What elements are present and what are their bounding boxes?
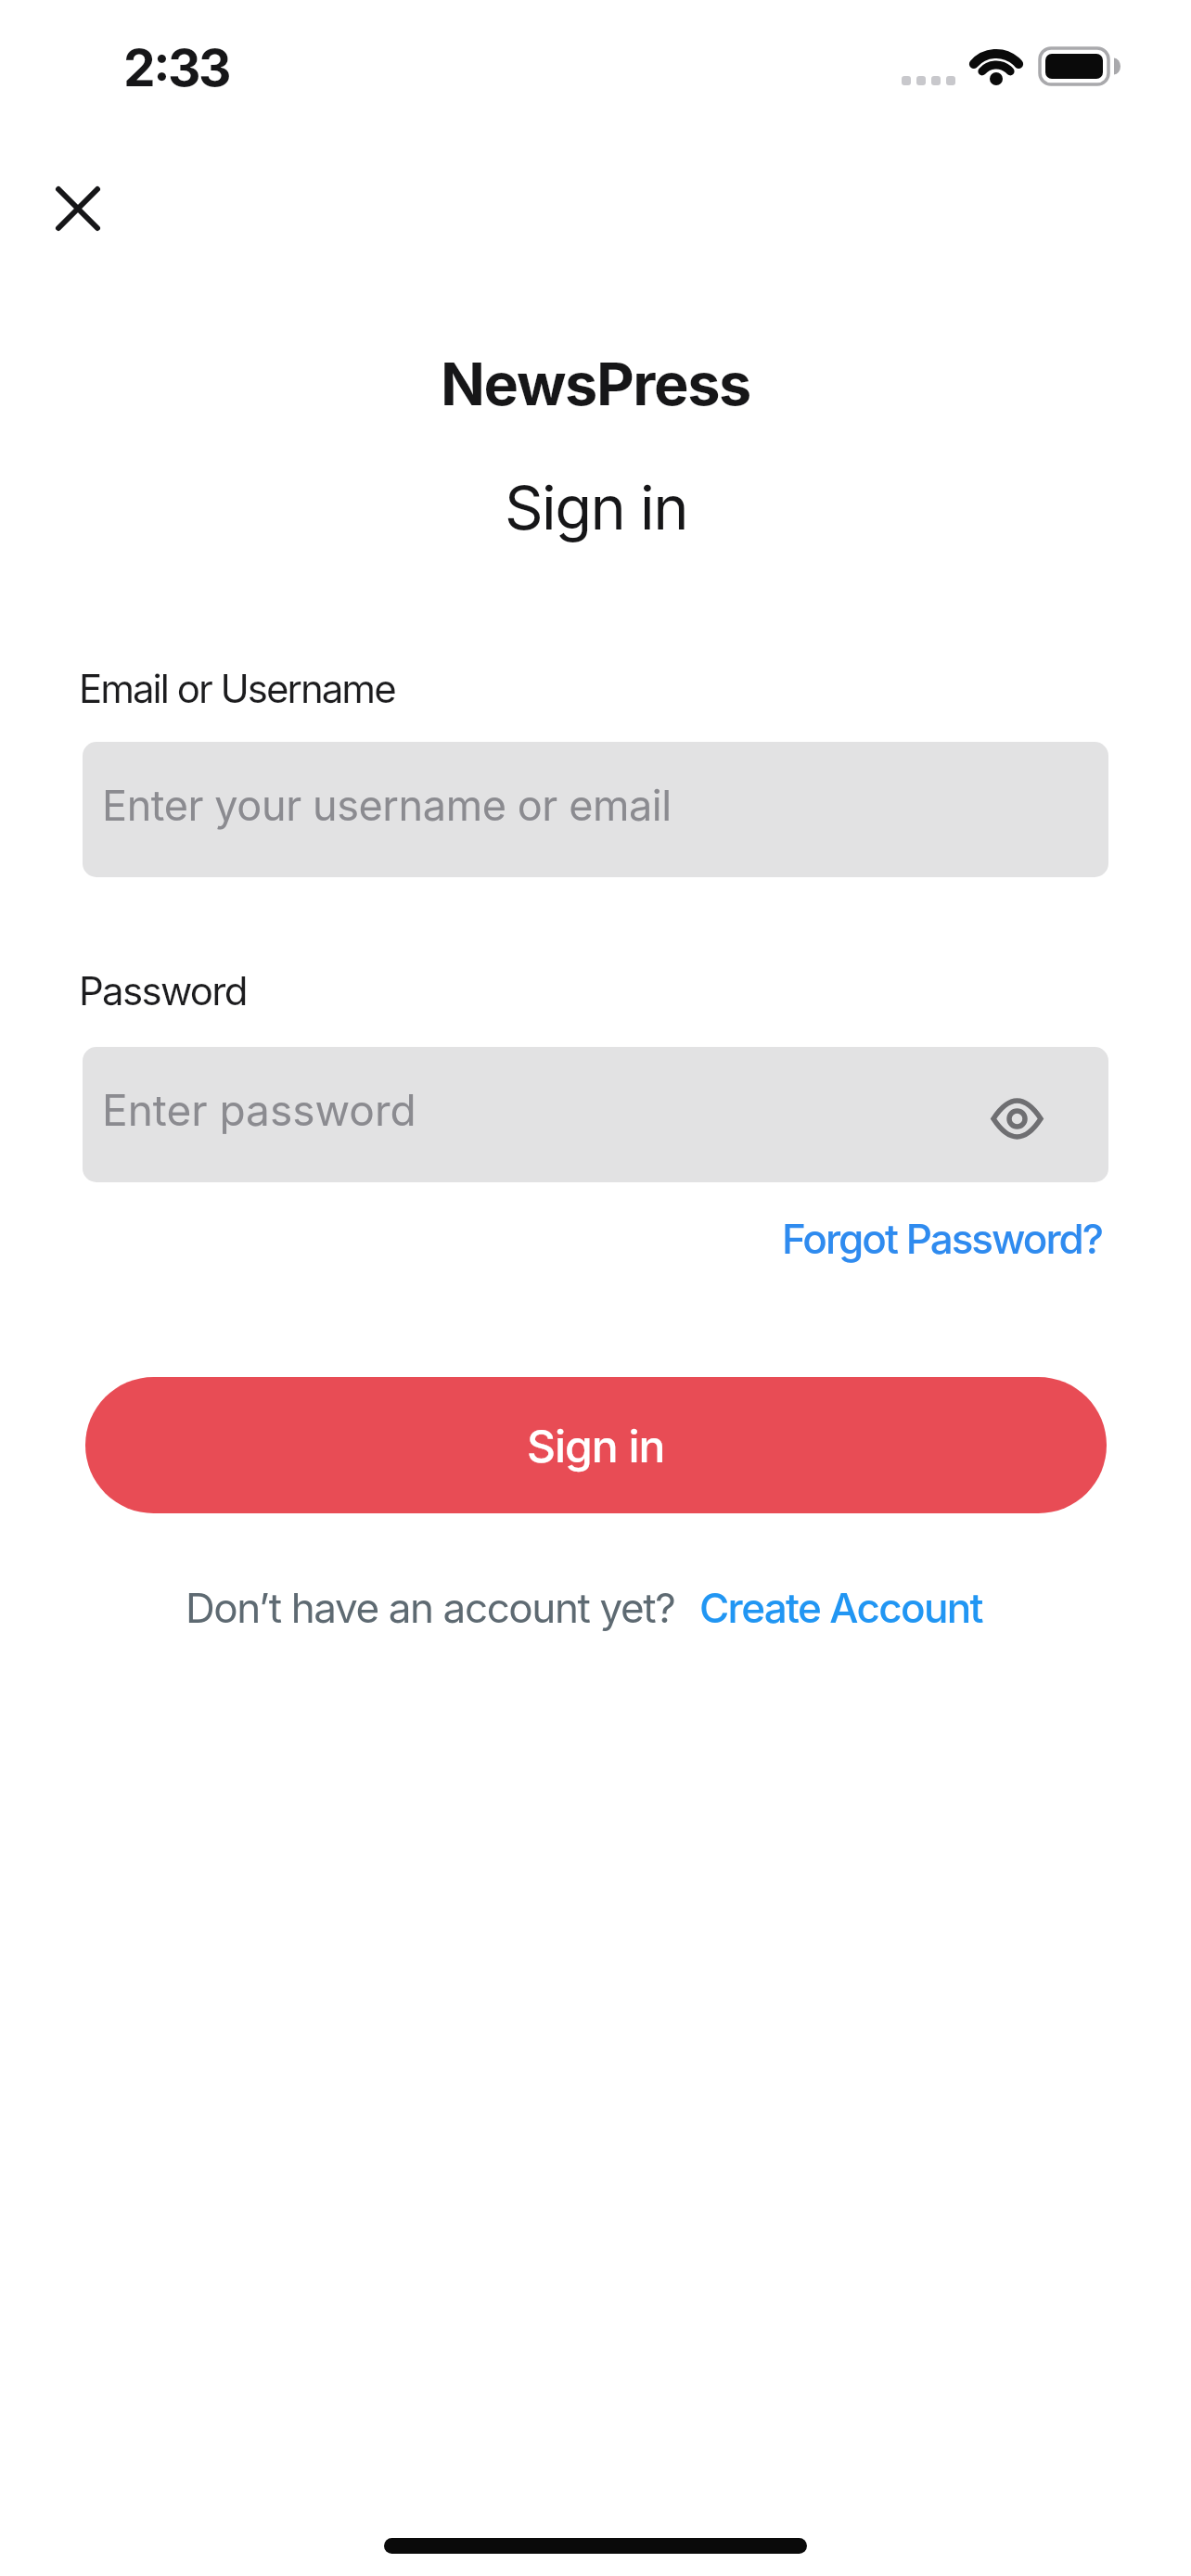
staticText: Password — [79, 967, 247, 1014]
staticText: Enter password — [102, 1084, 416, 1136]
staticText: Enter your username or email — [102, 780, 672, 830]
button[interactable]: Create Account — [699, 1583, 982, 1632]
staticText: 2:33 — [123, 37, 230, 99]
staticText: Sign in — [505, 471, 687, 544]
staticText: Don’t have an account yet? — [186, 1583, 675, 1632]
button[interactable]: Sign in — [85, 1377, 1107, 1513]
staticText: NewsPress — [441, 349, 750, 419]
staticText: Create Account — [699, 1583, 982, 1632]
staticText: Email or Username — [79, 665, 395, 712]
button[interactable]: Forgot Password? — [782, 1214, 1102, 1263]
staticText: Sign in — [527, 1419, 665, 1473]
button[interactable]: Enter password — [83, 1047, 1108, 1182]
staticText: Forgot Password? — [782, 1214, 1102, 1263]
button[interactable]: Enter your username or email — [83, 742, 1108, 877]
button[interactable] — [41, 172, 115, 246]
